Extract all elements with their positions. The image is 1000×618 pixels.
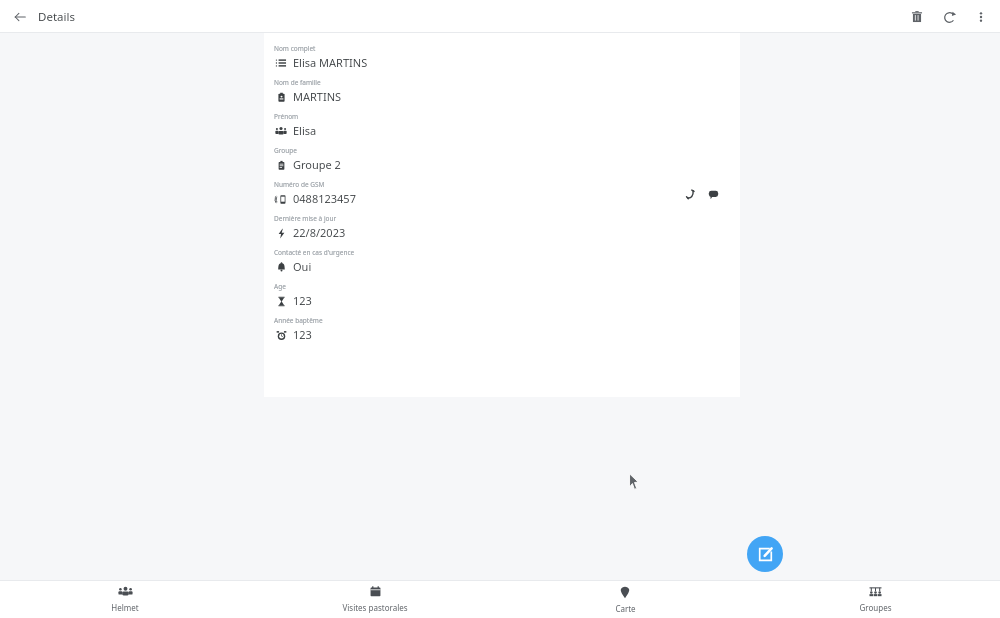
staticText: Nom complet	[274, 44, 316, 53]
staticText: Oui	[293, 259, 312, 274]
button[interactable]: Helmet	[0, 580, 250, 618]
staticText: MARTINS	[293, 89, 342, 104]
button[interactable]: Back	[4, 1, 36, 33]
staticText: Année baptême	[274, 316, 323, 325]
button[interactable]: Refresh	[933, 1, 965, 33]
staticText: Nom de famille	[274, 78, 321, 87]
button[interactable]: Edit	[747, 536, 783, 572]
button[interactable]: Numéro de GSM	[274, 177, 724, 211]
staticText: 123	[293, 327, 312, 342]
button[interactable]: Dernière mise à jour	[274, 211, 724, 245]
staticText: Age	[274, 282, 286, 291]
staticText: 0488123457	[293, 191, 356, 206]
button[interactable]: More options	[965, 1, 997, 33]
button[interactable]: Visites pastorales	[250, 580, 500, 618]
staticText: Carte	[615, 603, 636, 614]
button[interactable]: Groupe	[274, 143, 724, 177]
button[interactable]: Année baptême	[274, 313, 724, 347]
staticText: Helmet	[111, 602, 139, 613]
button[interactable]: Call	[679, 183, 701, 205]
staticText: 123	[293, 293, 312, 308]
button[interactable]: Carte	[500, 580, 750, 618]
staticText: Numéro de GSM	[274, 180, 325, 189]
staticText: Elisa MARTINS	[293, 55, 368, 70]
staticText: Contacté en cas d'urgence	[274, 248, 355, 257]
staticText: Visites pastorales	[342, 602, 408, 613]
button[interactable]: Delete	[901, 1, 933, 33]
button[interactable]: Prénom	[274, 109, 724, 143]
staticText: Prénom	[274, 112, 299, 121]
button[interactable]: Nom de famille	[274, 75, 724, 109]
button[interactable]: Send message	[702, 183, 724, 205]
button[interactable]: Contacté en cas d'urgence	[274, 245, 724, 279]
staticText: Elisa	[293, 123, 317, 138]
staticText: Dernière mise à jour	[274, 214, 337, 223]
staticText: Groupe 2	[293, 157, 341, 172]
staticText: Details	[38, 9, 75, 25]
button[interactable]: Age	[274, 279, 724, 313]
staticText: 22/8/2023	[293, 225, 346, 240]
button[interactable]: Groupes	[750, 580, 1000, 618]
button[interactable]: Nom complet	[274, 41, 724, 75]
staticText: Groupes	[859, 602, 892, 613]
staticText: Groupe	[274, 146, 297, 155]
